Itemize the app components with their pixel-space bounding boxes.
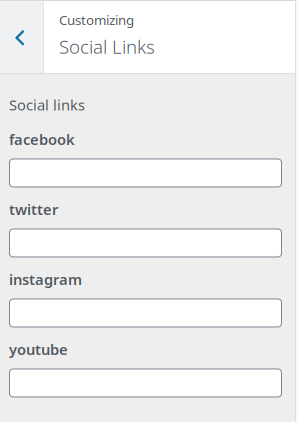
button[interactable]: twitter xyxy=(9,199,282,269)
staticText: youtube xyxy=(9,339,68,359)
staticText: Customizing xyxy=(59,11,134,29)
button[interactable]: youtube xyxy=(9,339,282,409)
staticText: Social links xyxy=(9,95,85,114)
staticText: instagram xyxy=(9,269,82,289)
button[interactable]: facebook xyxy=(9,129,282,199)
button[interactable]: Back xyxy=(0,1,43,73)
button[interactable]: instagram xyxy=(9,269,282,339)
staticText: twitter xyxy=(9,199,58,219)
staticText: Social Links xyxy=(59,34,155,59)
staticText: facebook xyxy=(9,129,75,149)
